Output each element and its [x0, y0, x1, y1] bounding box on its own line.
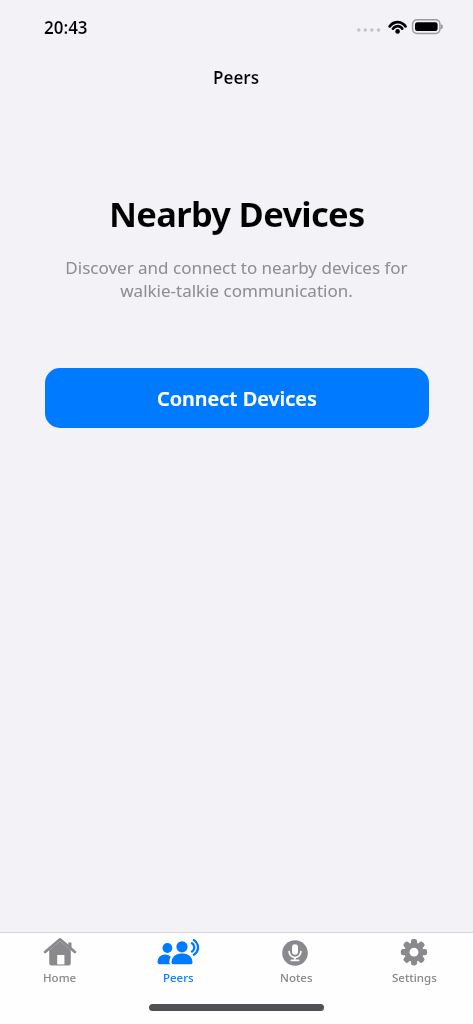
staticText: Peers — [163, 970, 194, 986]
staticText: Peers — [213, 66, 260, 89]
staticText: Discover and connect to nearby devices f… — [65, 256, 408, 302]
staticText: Settings — [392, 970, 437, 986]
staticText: Home — [43, 970, 77, 986]
button[interactable]: Notes — [237, 936, 355, 986]
button[interactable]: Home — [0, 936, 119, 986]
staticText: Connect Devices — [157, 385, 317, 412]
button[interactable]: Settings — [355, 936, 473, 986]
staticText: Notes — [280, 970, 313, 986]
button[interactable]: Connect Devices — [45, 368, 429, 428]
staticText: Nearby Devices — [109, 190, 365, 237]
staticText: 20:43 — [44, 16, 88, 39]
button[interactable]: Peers — [119, 936, 237, 986]
